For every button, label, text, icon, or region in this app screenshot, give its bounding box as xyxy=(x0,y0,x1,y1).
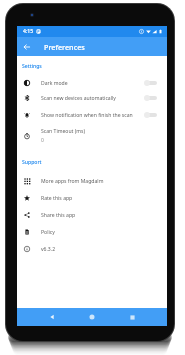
staticText: Dark mode xyxy=(41,80,144,87)
button[interactable]: Back xyxy=(43,308,61,326)
button[interactable]: Rate this app xyxy=(17,190,167,206)
staticText: Preferences xyxy=(44,42,85,52)
button[interactable]: Policy xyxy=(17,224,167,240)
button[interactable]: Scan new devices automatically xyxy=(17,90,167,106)
button[interactable]: Back xyxy=(17,37,37,56)
staticText: Share this app xyxy=(41,212,76,219)
staticText: More apps from Magdalm xyxy=(41,178,104,185)
staticText: Support xyxy=(22,159,42,166)
button[interactable]: More apps from Magdalm xyxy=(17,173,167,189)
staticText: Scan Timeout (ms) xyxy=(41,128,86,135)
button[interactable]: Share this app xyxy=(17,207,167,223)
staticText: Show notification when finish the scan xyxy=(41,112,144,119)
staticText: Settings xyxy=(22,63,42,70)
staticText: v6.3.2 xyxy=(41,246,56,253)
staticText: 0 xyxy=(41,137,44,144)
staticText: 4:15 xyxy=(23,28,34,35)
staticText: Scan new devices automatically xyxy=(41,95,144,102)
button[interactable]: Recents xyxy=(123,308,141,326)
button[interactable]: Show notification when finish the scan xyxy=(17,107,167,123)
staticText: Rate this app xyxy=(41,195,73,202)
button[interactable]: v6.3.2 xyxy=(17,241,167,257)
button[interactable]: Home xyxy=(83,308,101,326)
button[interactable]: Dark mode xyxy=(17,75,167,91)
staticText: Policy xyxy=(41,229,55,236)
button[interactable]: Scan Timeout (ms) xyxy=(17,127,167,144)
